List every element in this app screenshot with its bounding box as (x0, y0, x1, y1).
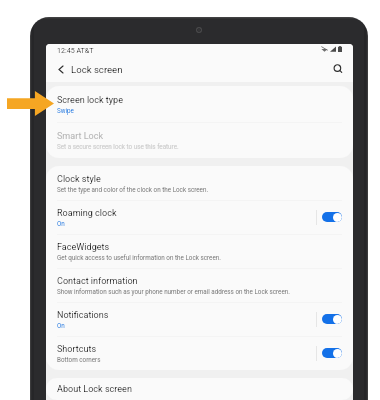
staticText: Contact information (57, 276, 138, 287)
staticText: Show information such as your phone numb… (57, 288, 290, 295)
button[interactable]: Navigate up (52, 60, 70, 78)
button[interactable]: Shortcuts (46, 336, 353, 370)
button[interactable]: Roaming clock switch (322, 212, 342, 222)
staticText: Notifications (57, 310, 109, 321)
staticText: On (57, 322, 65, 329)
button[interactable]: Screen lock type (46, 86, 353, 122)
button[interactable]: Search (329, 60, 347, 78)
other: Pointer (7, 91, 54, 116)
staticText: 12:45 AT&T (57, 46, 94, 54)
button[interactable]: Notifications switch (322, 314, 342, 324)
staticText: Bottom corners (57, 356, 101, 363)
staticText: On (57, 220, 65, 227)
staticText: Roaming clock (57, 208, 117, 219)
staticText: Set the type and color of the clock on t… (57, 186, 209, 193)
staticText: FaceWidgets (57, 242, 110, 253)
button[interactable]: Shortcuts switch (322, 348, 342, 358)
staticText: About Lock screen (57, 384, 132, 395)
staticText: Get quick access to useful information o… (57, 254, 221, 261)
button[interactable]: Roaming clock (46, 200, 353, 234)
staticText: Lock screen (71, 64, 123, 75)
staticText: Set a secure screen lock to use this fea… (57, 143, 179, 150)
button[interactable]: Contact information (46, 268, 353, 302)
button[interactable]: Smart Lock (46, 122, 353, 158)
staticText: Clock style (57, 174, 101, 185)
staticText: Screen lock type (57, 95, 123, 106)
button[interactable]: Clock style (46, 166, 353, 200)
staticText: Swipe (57, 107, 74, 114)
button[interactable]: About Lock screen (46, 378, 353, 400)
staticText: Smart Lock (57, 131, 104, 142)
staticText: Shortcuts (57, 344, 97, 355)
button[interactable]: Notifications (46, 302, 353, 336)
button[interactable]: FaceWidgets (46, 234, 353, 268)
